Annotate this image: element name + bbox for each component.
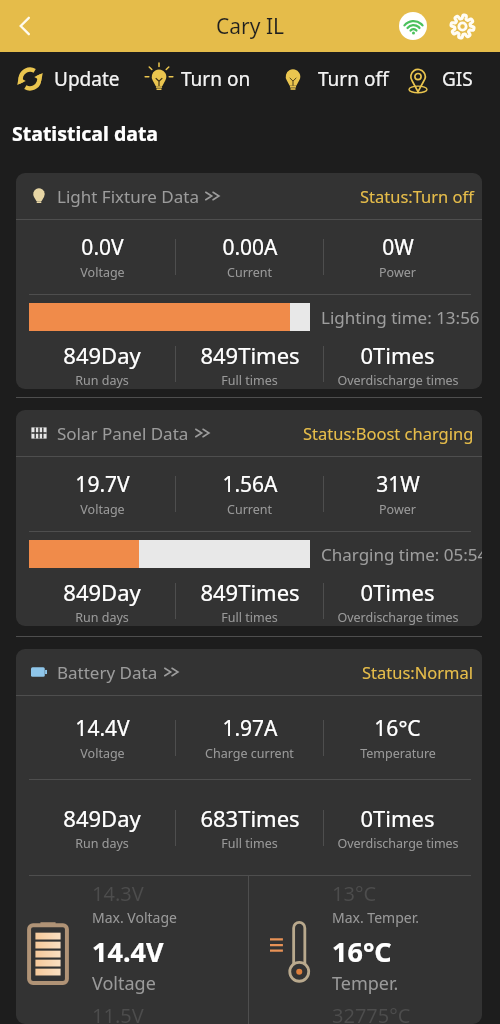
staticText: 849Day: [63, 803, 141, 833]
staticText: Turn on: [181, 66, 251, 92]
staticText: Temperature: [360, 745, 436, 762]
staticText: Status:Normal: [362, 661, 474, 683]
staticText: 16°C: [374, 714, 421, 743]
staticText: 849Times: [200, 577, 300, 607]
button[interactable]: GIS: [392, 52, 500, 105]
staticText: Full times: [221, 372, 278, 389]
button[interactable]: Settings: [443, 7, 481, 45]
staticText: Voltage: [80, 264, 125, 281]
staticText: Overdischarge times: [337, 372, 459, 389]
staticText: Current: [227, 501, 272, 518]
staticText: Run days: [75, 835, 129, 852]
staticText: 1.56A: [222, 470, 278, 499]
staticText: Solar Panel Data: [57, 422, 189, 445]
staticText: 14.3V: [92, 880, 144, 907]
staticText: 683Times: [200, 803, 300, 833]
staticText: Voltage: [92, 971, 156, 996]
staticText: Voltage: [80, 745, 125, 762]
staticText: Run days: [75, 609, 129, 626]
staticText: 0Times: [360, 340, 435, 370]
staticText: 32775°C: [332, 1002, 411, 1024]
staticText: Current: [227, 264, 272, 281]
button[interactable]: Turn off: [261, 52, 392, 105]
staticText: Cary IL: [216, 12, 285, 41]
staticText: Voltage: [80, 501, 125, 518]
staticText: Charge current: [205, 745, 294, 762]
staticText: 0W: [382, 233, 414, 262]
staticText: 0Times: [360, 577, 435, 607]
staticText: GIS: [442, 66, 473, 92]
staticText: 1.97A: [222, 714, 278, 743]
staticText: Battery Data: [57, 661, 158, 684]
staticText: 0.0V: [81, 233, 124, 262]
staticText: Update: [54, 66, 120, 92]
staticText: 849Times: [200, 340, 300, 370]
staticText: Light Fixture Data: [57, 185, 199, 208]
staticText: 849Day: [63, 340, 141, 370]
staticText: 0Times: [360, 803, 435, 833]
staticText: Status:Turn off: [360, 185, 474, 207]
staticText: Temper.: [332, 971, 399, 996]
staticText: Overdischarge times: [337, 609, 459, 626]
staticText: 849Day: [63, 577, 141, 607]
staticText: Overdischarge times: [337, 835, 459, 852]
button[interactable]: Back: [3, 4, 47, 48]
staticText: 14.4V: [75, 714, 130, 743]
staticText: Full times: [221, 835, 278, 852]
staticText: Full times: [221, 609, 278, 626]
staticText: Status:Boost charging: [303, 422, 474, 444]
staticText: Power: [379, 501, 416, 518]
staticText: Run days: [75, 372, 129, 389]
staticText: 11.5V: [92, 1002, 144, 1024]
staticText: 13°C: [332, 880, 377, 907]
staticText: Turn off: [318, 66, 389, 92]
staticText: Max. Temper.: [332, 908, 419, 927]
button[interactable]: Update: [0, 52, 130, 105]
staticText: 31W: [376, 470, 420, 499]
button[interactable]: Solar Panel Data: [16, 410, 482, 456]
staticText: 16°C: [332, 933, 392, 970]
staticText: Charging time: 05:54: [321, 543, 482, 566]
staticText: 14.4V: [92, 933, 164, 970]
button[interactable]: WiFi status: [394, 7, 432, 45]
button[interactable]: Light Fixture Data: [16, 173, 482, 219]
staticText: Lighting time: 13:56: [321, 306, 480, 329]
staticText: 0.00A: [222, 233, 278, 262]
staticText: Statistical data: [12, 120, 159, 147]
button[interactable]: Turn on: [130, 52, 261, 105]
staticText: Power: [379, 264, 416, 281]
staticText: 19.7V: [75, 470, 130, 499]
button[interactable]: Battery Data: [16, 649, 482, 695]
staticText: Max. Voltage: [92, 908, 177, 927]
